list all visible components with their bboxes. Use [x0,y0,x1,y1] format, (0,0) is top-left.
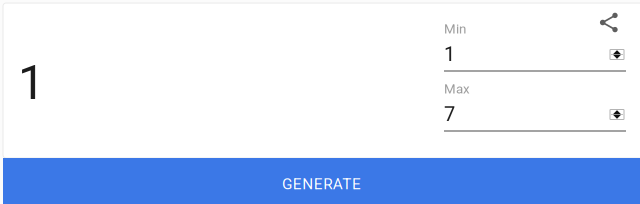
staticText: Min [444,21,466,37]
button[interactable]: Adjust Min [610,49,626,59]
button[interactable]: GENERATE [3,158,640,204]
staticText: Max [444,81,470,97]
staticText: 7 [444,103,455,126]
staticText: GENERATE [282,175,361,193]
staticText: 1 [18,54,45,111]
staticText: 1 [444,43,455,66]
button[interactable]: Adjust Max [610,109,626,119]
button[interactable]: Share [594,9,624,36]
